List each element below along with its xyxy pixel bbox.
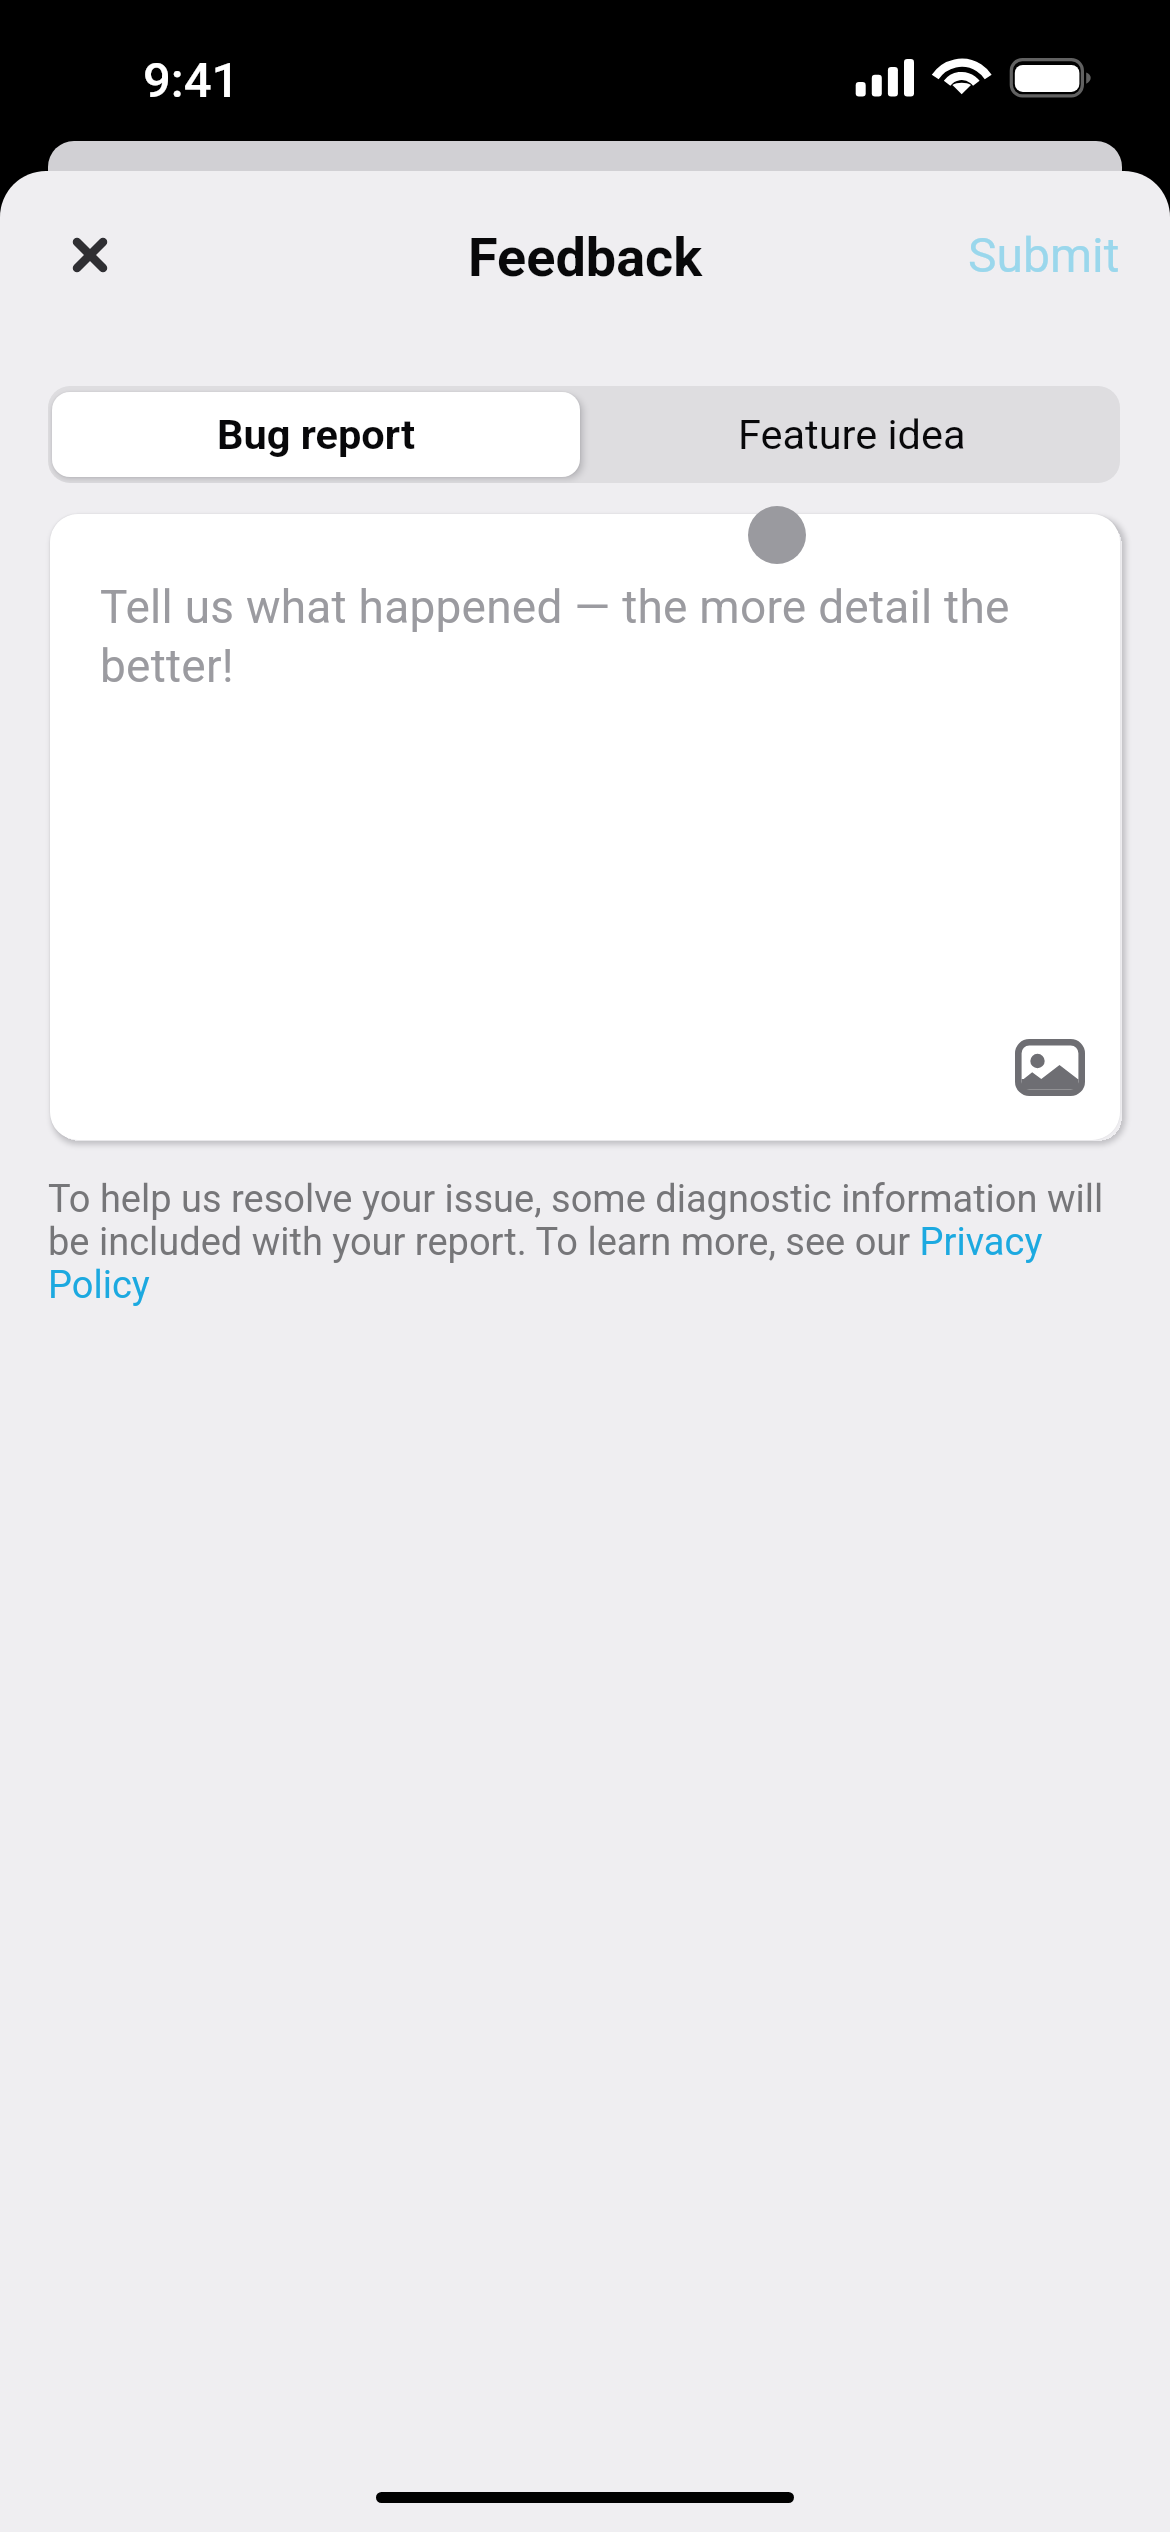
button[interactable]: Close <box>46 211 134 299</box>
staticText: Feedback <box>0 226 1170 289</box>
button[interactable]: Bug report <box>52 392 580 477</box>
staticText: To help us resolve your issue, some diag… <box>48 1177 1110 1307</box>
staticText: Feature idea <box>738 410 966 459</box>
button[interactable]: Feature idea <box>584 386 1120 483</box>
button[interactable]: Submit <box>930 211 1120 299</box>
button[interactable]: Attach image <box>994 1018 1106 1116</box>
staticText: Submit <box>968 227 1120 283</box>
staticText: 9:41 <box>143 52 240 109</box>
staticText: Bug report <box>217 410 415 459</box>
staticText: Tell us what happened — the more detail … <box>100 580 1040 693</box>
button[interactable]: Tell us what happened — the more detail … <box>50 514 1120 1140</box>
